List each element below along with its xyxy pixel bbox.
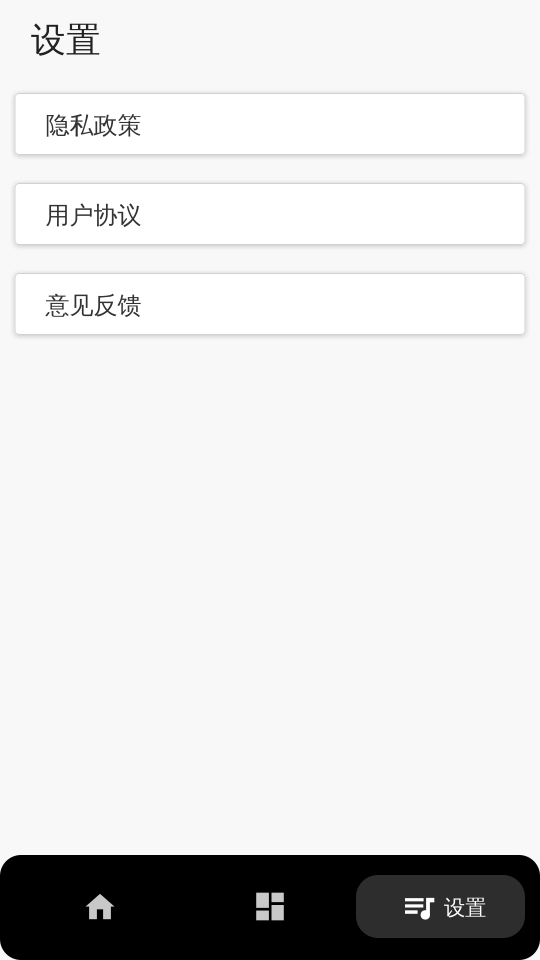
button[interactable]: 设置 [356, 875, 525, 938]
staticText: 用户协议 [45, 201, 141, 230]
staticText: 设置 [444, 895, 486, 921]
staticText: 意见反馈 [45, 291, 141, 320]
button[interactable]: 意见反馈 [14, 273, 525, 335]
button[interactable]: 用户协议 [14, 183, 525, 245]
button[interactable]: 首页 [30, 863, 170, 949]
staticText: 隐私政策 [45, 111, 141, 140]
button[interactable]: 分类 [200, 863, 340, 949]
button[interactable]: 隐私政策 [14, 93, 525, 155]
staticText: 设置 [31, 19, 101, 62]
